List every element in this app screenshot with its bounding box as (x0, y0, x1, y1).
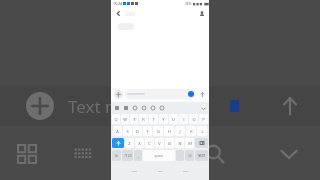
button[interactable]: H (164, 126, 174, 136)
button[interactable]: W (121, 114, 129, 124)
staticText: C (148, 141, 151, 146)
staticText: space (154, 153, 164, 158)
staticText: R (142, 117, 145, 122)
button[interactable]: F (143, 126, 152, 136)
staticText: M (188, 141, 192, 146)
staticText: 15:24 (113, 1, 122, 6)
staticText: P (202, 117, 205, 122)
staticText: Q (114, 117, 118, 122)
staticText: V (158, 141, 161, 146)
button[interactable]: Y (159, 114, 168, 124)
button[interactable]: More (199, 104, 207, 112)
staticText: T (152, 117, 155, 122)
button[interactable]: Shift (112, 138, 124, 148)
button[interactable]: Toolbar item (131, 104, 138, 111)
button[interactable]: Emoji (122, 137, 156, 171)
staticText: ?123 (124, 153, 132, 158)
button[interactable]: Emoji (185, 150, 194, 161)
button[interactable]: Toolbar item (122, 104, 129, 111)
button[interactable]: B (165, 138, 174, 148)
button[interactable]: Back (114, 9, 123, 18)
staticText: J (179, 129, 181, 134)
staticText: X (138, 141, 141, 146)
staticText: K (190, 129, 193, 134)
staticText: . (180, 153, 181, 158)
button[interactable]: Next (195, 150, 208, 161)
staticText: ☺ (188, 154, 192, 158)
staticText: ⊞ (115, 154, 118, 158)
staticText: , (138, 153, 139, 158)
staticText: B (168, 141, 171, 146)
staticText: E (133, 117, 136, 122)
button[interactable]: G (153, 126, 163, 136)
button[interactable]: Comma (134, 150, 142, 161)
button[interactable]: Collapse (272, 137, 306, 171)
button[interactable]: N (175, 138, 184, 148)
button[interactable]: E (130, 114, 138, 124)
staticText: Y (162, 117, 165, 122)
button[interactable]: Apps (10, 137, 44, 171)
staticText: D (136, 129, 139, 134)
button[interactable]: Q (112, 114, 120, 124)
button[interactable]: Toolbar item (113, 104, 120, 111)
staticText: O (192, 117, 196, 122)
button[interactable]: X (135, 138, 144, 148)
staticText: NEXT (198, 154, 206, 158)
button[interactable]: D (133, 126, 142, 136)
staticText: 35% (185, 2, 192, 6)
button[interactable]: Numbers (122, 150, 133, 161)
button[interactable]: S (123, 126, 132, 136)
button[interactable]: Toolbar item (149, 104, 156, 111)
button[interactable]: Contact (198, 10, 206, 18)
staticText: A (116, 129, 119, 134)
button[interactable]: Toolbar item (158, 104, 165, 111)
button[interactable]: U (169, 114, 178, 124)
button[interactable]: Keyboard (66, 137, 100, 171)
button[interactable] (125, 89, 196, 99)
staticText: F (146, 129, 149, 134)
button[interactable]: V (155, 138, 164, 148)
button[interactable]: A (113, 126, 122, 136)
button[interactable]: Search (198, 137, 232, 171)
button[interactable]: C (145, 138, 154, 148)
staticText: L (201, 129, 204, 134)
staticText: I (183, 117, 185, 122)
button[interactable]: Symbols (112, 150, 121, 161)
staticText: H (168, 129, 171, 134)
staticText: Z (128, 141, 131, 146)
button[interactable]: J (175, 126, 185, 136)
button[interactable]: T (149, 114, 158, 124)
button[interactable]: K (186, 126, 196, 136)
button[interactable]: Z (125, 138, 134, 148)
staticText: W (123, 117, 127, 122)
button[interactable]: P (199, 114, 208, 124)
staticText: U (172, 117, 175, 122)
staticText: S (126, 129, 129, 134)
button[interactable]: Backspace (195, 138, 208, 148)
button[interactable]: Toolbar item (140, 104, 147, 111)
button[interactable]: R (139, 114, 148, 124)
button[interactable]: I (179, 114, 188, 124)
button[interactable]: Send (274, 90, 306, 122)
staticText: Text me (68, 95, 131, 118)
button[interactable]: Send (198, 90, 206, 98)
button[interactable]: Space (143, 150, 175, 161)
button[interactable]: L (197, 126, 207, 136)
staticText: N (178, 141, 182, 146)
button[interactable]: O (189, 114, 198, 124)
button[interactable]: M (185, 138, 194, 148)
staticText: G (157, 129, 160, 134)
